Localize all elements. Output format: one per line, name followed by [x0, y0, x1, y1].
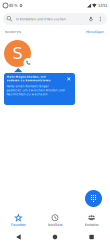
- button[interactable]: Hinzufügen: [85, 29, 105, 35]
- staticText: FAVORITEN: [5, 30, 21, 33]
- staticText: anderen zu kommunizieren: [6, 79, 50, 82]
- button[interactable]: Favoriten: [0, 211, 37, 230]
- staticText: Hinzufügen: [86, 30, 104, 34]
- staticText: Anrufliste: [47, 223, 62, 227]
- staticText: 13:51: [98, 3, 107, 8]
- button[interactable]: Wähltasten: [85, 190, 102, 207]
- staticText: Halte einen Kontakt länger: [6, 84, 48, 88]
- button[interactable]: Startbildschirm: [37, 230, 73, 244]
- staticText: In Kontakten und Orten suchen: [16, 17, 66, 21]
- button[interactable]: Übersicht: [73, 230, 110, 244]
- button[interactable]: Schließen: [65, 76, 72, 82]
- button[interactable]: Anrufliste: [37, 211, 73, 230]
- staticText: 85 %: [9, 3, 18, 8]
- button[interactable]: Zurück: [0, 230, 37, 244]
- button[interactable]: Kontakte: [73, 211, 110, 230]
- staticText: Kontakte: [85, 223, 99, 227]
- staticText: Favoriten: [11, 223, 26, 227]
- button[interactable]: In Kontakten und Orten suchen: [3, 13, 107, 25]
- button[interactable]: Favorit S: [4, 40, 33, 68]
- staticText: S: [12, 44, 22, 63]
- staticText: Nachrichten zu wechseln: [6, 92, 47, 96]
- staticText: gedrückt, um zwischen Anrufen und: [6, 88, 64, 92]
- staticText: Mehr Möglichkeiten, mit: [6, 75, 45, 78]
